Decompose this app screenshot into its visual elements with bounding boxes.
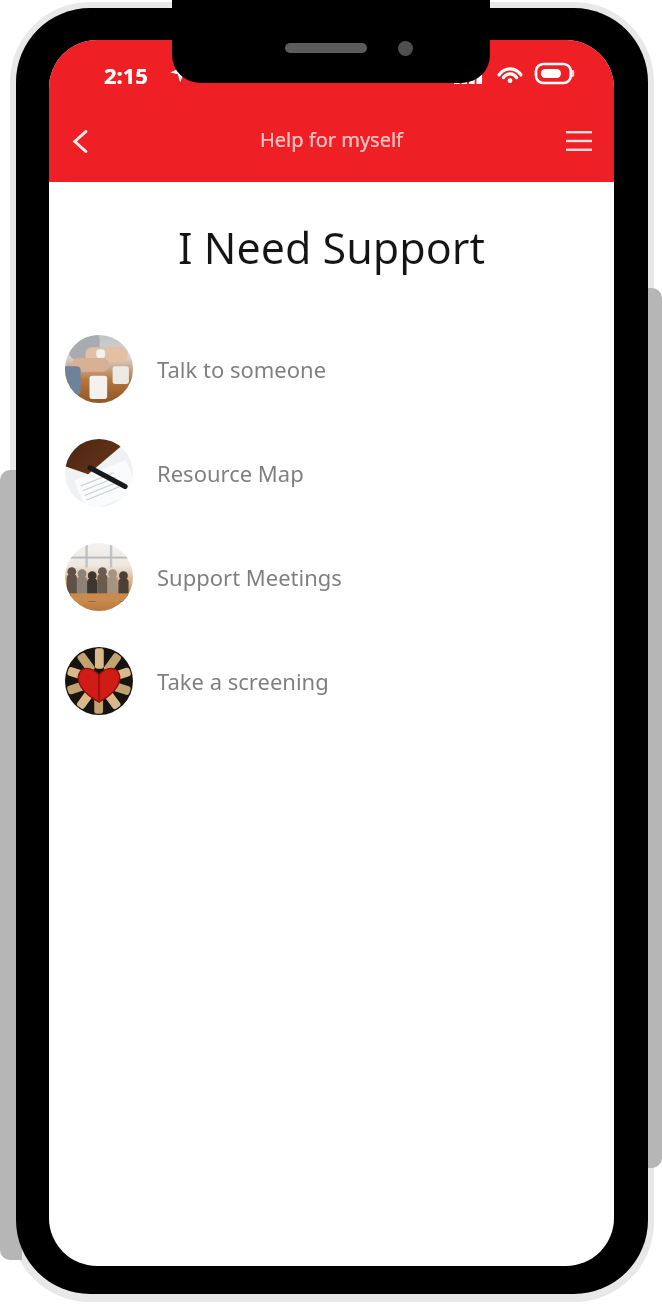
button[interactable]: Take a screening	[49, 629, 614, 733]
staticText: 2:15	[104, 60, 148, 90]
staticText: Talk to someone	[157, 354, 327, 384]
button[interactable]: Menu	[550, 112, 608, 170]
staticText: Help for myself	[260, 126, 403, 153]
staticText: I Need Support	[49, 218, 614, 277]
button[interactable]: Resource Map	[49, 421, 614, 525]
button[interactable]: Talk to someone	[49, 317, 614, 421]
staticText: Support Meetings	[157, 562, 342, 592]
staticText: Resource Map	[157, 458, 304, 488]
staticText: Take a screening	[157, 666, 329, 696]
button[interactable]: Support Meetings	[49, 525, 614, 629]
button[interactable]: Back	[51, 112, 109, 170]
